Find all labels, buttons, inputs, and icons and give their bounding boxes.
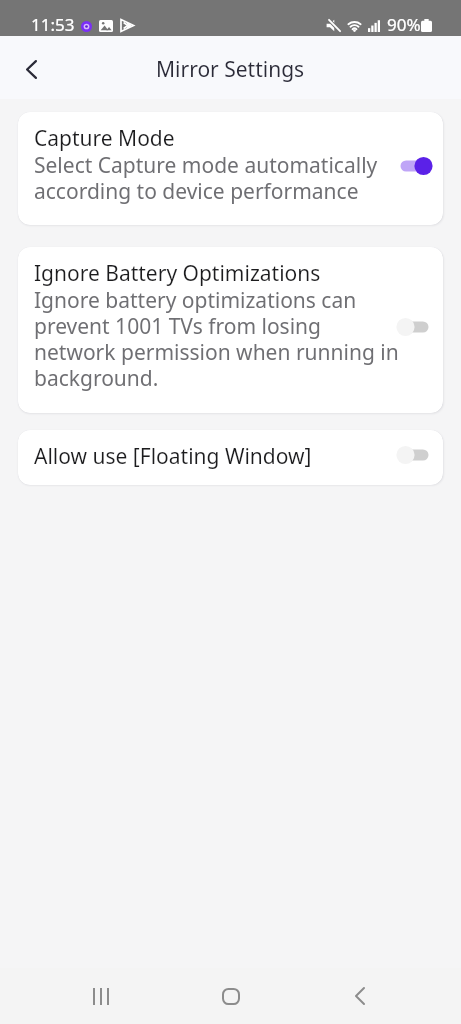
staticText: Ignore Battery Optimizations (34, 256, 321, 288)
button[interactable]: Allow use [Floating Window] (18, 430, 443, 485)
staticText: 11:53 (31, 13, 75, 36)
staticText: Capture Mode (34, 121, 175, 153)
button[interactable]: Home (203, 968, 259, 1024)
button[interactable]: Switch off (397, 442, 432, 468)
button[interactable]: Ignore Battery Optimizations (18, 247, 443, 413)
staticText: Mirror Settings (156, 58, 305, 82)
staticText: Select Capture mode automatically accord… (34, 153, 378, 205)
button[interactable]: Capture Mode (18, 112, 443, 225)
button[interactable]: Recent apps (73, 968, 129, 1024)
button[interactable]: Back (332, 968, 388, 1024)
button[interactable]: Switch on (397, 153, 432, 179)
staticText: Ignore battery optimizations can prevent… (34, 288, 399, 392)
staticText: 90% (387, 13, 421, 36)
button[interactable]: Switch off (397, 314, 432, 340)
button[interactable]: Back (9, 47, 53, 91)
staticText: Allow use [Floating Window] (34, 439, 312, 471)
